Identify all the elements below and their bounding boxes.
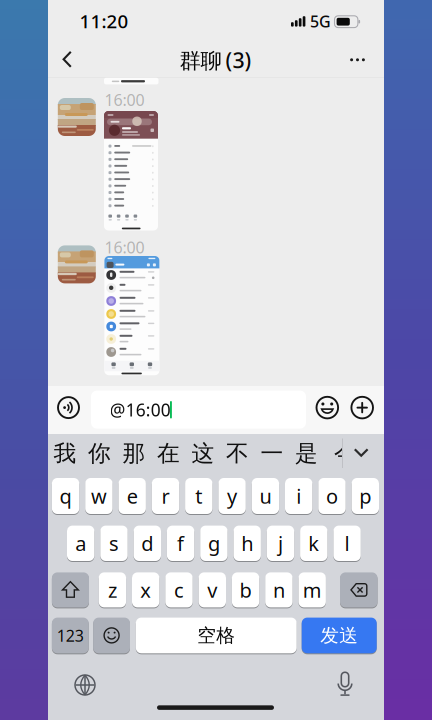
button[interactable]: 我	[50, 436, 80, 470]
button[interactable]: z	[99, 572, 126, 607]
staticText: l	[345, 530, 350, 557]
button[interactable]: Profile photo	[58, 245, 96, 283]
staticText: z	[108, 577, 117, 603]
button[interactable]: n	[265, 572, 293, 607]
staticText: x	[140, 577, 151, 603]
staticText: @16:00	[110, 398, 171, 421]
button[interactable]: p	[352, 478, 379, 514]
staticText: q	[60, 483, 72, 509]
staticText: 在	[157, 440, 180, 467]
button[interactable]: Next keyboard	[71, 671, 99, 699]
button[interactable]: b	[232, 572, 259, 607]
button[interactable]: v	[199, 572, 226, 607]
staticText: 群聊 (3)	[179, 46, 251, 74]
button[interactable]: Profile photo	[58, 98, 96, 136]
button[interactable]: w	[85, 478, 113, 514]
button[interactable]: a	[67, 526, 94, 561]
button[interactable]: 123	[52, 618, 89, 653]
staticText: f	[177, 530, 184, 557]
button[interactable]: c	[165, 572, 193, 607]
button[interactable]: Image message	[104, 256, 159, 375]
button[interactable]: h	[233, 526, 261, 561]
button[interactable]: Delete	[340, 572, 377, 607]
staticText: 发送	[320, 624, 358, 647]
staticText: 空格	[197, 624, 235, 647]
staticText: 这	[191, 440, 214, 467]
button[interactable]: More	[343, 45, 373, 75]
button[interactable]: g	[200, 526, 228, 561]
staticText: j	[278, 530, 283, 557]
button[interactable]: Collapse candidates	[350, 441, 374, 465]
button[interactable]: 发送	[302, 618, 377, 653]
button[interactable]: t	[185, 478, 212, 514]
button[interactable]: m	[298, 572, 326, 607]
button[interactable]: Emoji keyboard	[93, 618, 130, 653]
staticText: i	[296, 483, 301, 509]
staticText: v	[207, 577, 217, 603]
staticText: 11:20	[79, 9, 128, 33]
staticText: 16:00	[104, 89, 144, 110]
button[interactable]: u	[252, 478, 279, 514]
staticText: 是	[295, 440, 318, 467]
button[interactable]: More functions	[350, 395, 375, 420]
button[interactable]: Voice message	[56, 395, 81, 420]
button[interactable]: Image message	[104, 111, 158, 230]
staticText: o	[326, 483, 338, 509]
staticText: p	[359, 483, 371, 509]
button[interactable]: Shift	[52, 572, 89, 607]
button[interactable]: d	[134, 526, 161, 561]
staticText: n	[273, 577, 285, 603]
staticText: s	[109, 530, 119, 557]
staticText: 你	[88, 440, 111, 467]
button[interactable]: 是	[291, 436, 321, 470]
button[interactable]: f	[167, 526, 194, 561]
staticText: b	[240, 577, 252, 603]
button[interactable]: q	[52, 478, 79, 514]
staticText: m	[303, 577, 322, 603]
button[interactable]: l	[333, 526, 361, 561]
staticText: 16:00	[104, 237, 144, 258]
button[interactable]: i	[285, 478, 312, 514]
staticText: e	[127, 483, 138, 509]
staticText: 我	[53, 440, 76, 467]
button[interactable]: k	[300, 526, 327, 561]
button[interactable]: 不	[222, 436, 252, 470]
staticText: y	[227, 483, 237, 509]
staticText: k	[308, 530, 319, 557]
staticText: c	[174, 577, 184, 603]
button[interactable]: r	[152, 478, 179, 514]
staticText: r	[161, 483, 169, 509]
staticText: u	[259, 483, 271, 509]
button[interactable]: s	[100, 526, 128, 561]
staticText: g	[208, 530, 220, 557]
staticText: d	[141, 530, 153, 557]
button[interactable]: 你	[84, 436, 114, 470]
button[interactable]: Emoji	[315, 395, 340, 420]
staticText: 不	[226, 440, 249, 467]
staticText: 一	[260, 440, 283, 467]
button[interactable]: o	[318, 478, 346, 514]
staticText: w	[91, 483, 107, 509]
staticText: 那	[122, 440, 145, 467]
button[interactable]: 这	[188, 436, 218, 470]
button[interactable]: Dictate	[331, 671, 359, 699]
button[interactable]: 那	[119, 436, 149, 470]
button[interactable]: j	[267, 526, 294, 561]
staticText: 5G	[310, 11, 331, 32]
button[interactable]: x	[132, 572, 159, 607]
button[interactable]: 空格	[136, 618, 297, 653]
staticText: t	[195, 483, 202, 509]
staticText: 今	[334, 440, 357, 467]
button[interactable]: y	[218, 478, 246, 514]
button[interactable]: 一	[257, 436, 287, 470]
button[interactable]: Back	[54, 44, 84, 74]
staticText: 123	[57, 625, 84, 646]
button[interactable]: 在	[153, 436, 183, 470]
button[interactable]: e	[118, 478, 146, 514]
button[interactable]: Message field	[91, 391, 306, 429]
staticText: h	[241, 530, 253, 557]
staticText: a	[75, 530, 86, 557]
